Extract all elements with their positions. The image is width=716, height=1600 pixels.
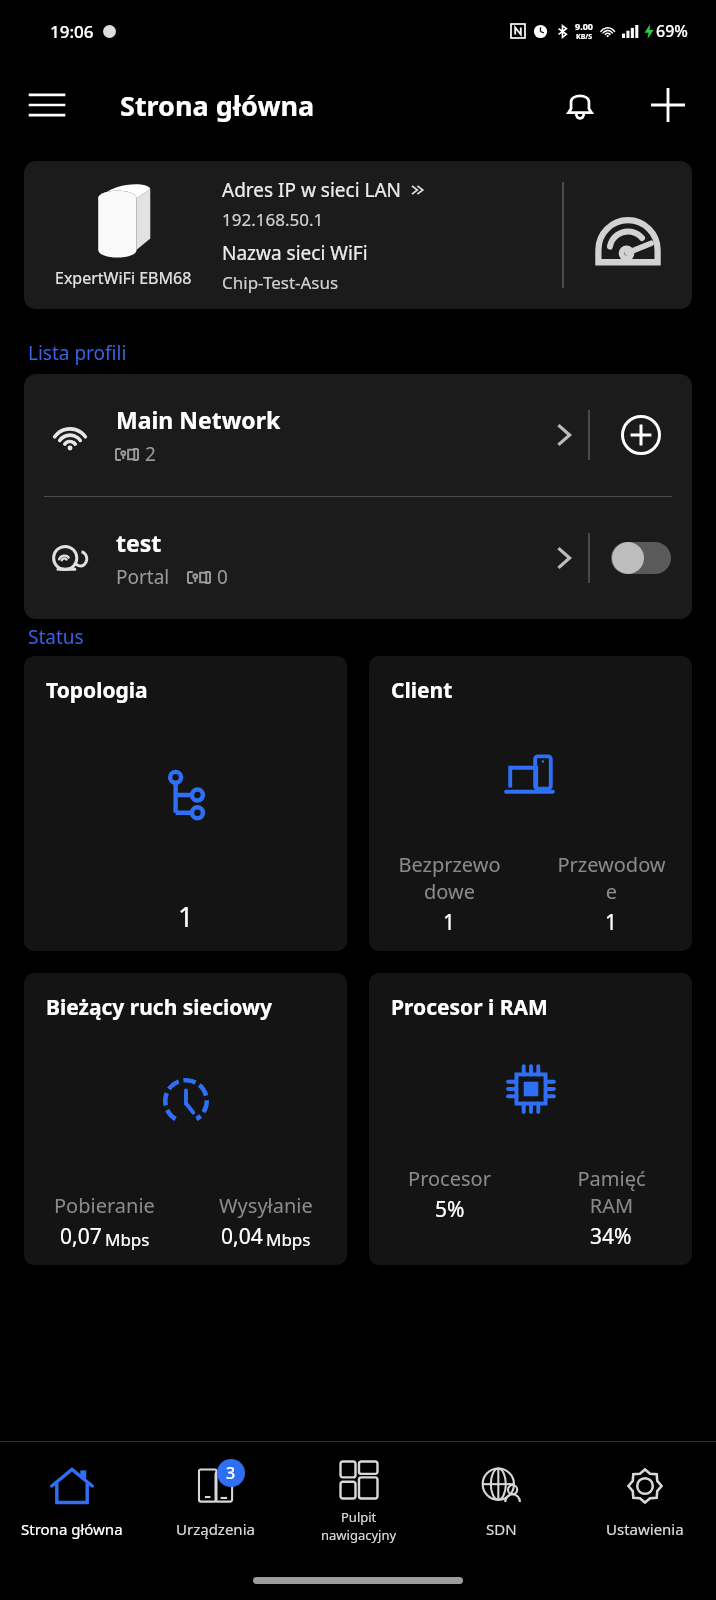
staticText: Chip-Test-Asus (222, 271, 339, 294)
staticText: 192.168.50.1 (222, 208, 324, 231)
staticText: Procesor i RAM (391, 993, 692, 1022)
button[interactable]: Open Main Network (540, 411, 588, 459)
button[interactable]: Notifications (550, 75, 610, 135)
staticText: Adres IP w sieci LAN (222, 177, 402, 203)
button[interactable]: Pulpit (287, 1442, 430, 1560)
staticText: 9.00 (575, 20, 593, 32)
button[interactable]: Add (638, 75, 698, 135)
staticText: Pobieranie (54, 1192, 155, 1219)
staticText: 5% (435, 1195, 465, 1224)
button[interactable]: Procesor i RAM (369, 973, 692, 1265)
button[interactable]: Ustawienia (573, 1442, 716, 1560)
staticText: 2 (145, 441, 156, 467)
staticText: Mbps (105, 1228, 150, 1251)
staticText: SDN (486, 1519, 517, 1539)
staticText: Bezprzewo dowe (398, 851, 501, 905)
staticText: 69% (656, 20, 688, 42)
staticText: Bieżący ruch sieciowy (46, 993, 347, 1022)
staticText: Ustawienia (606, 1519, 684, 1539)
staticText: Nazwa sieci WiFi (222, 240, 368, 266)
staticText: 0,07 (60, 1222, 102, 1251)
staticText: Urządzenia (176, 1519, 255, 1539)
staticText: Strona główna (21, 1519, 123, 1539)
staticText: 3 (226, 1462, 236, 1484)
staticText: 34% (590, 1222, 632, 1251)
staticText: Portal (116, 564, 170, 590)
staticText: Procesor (408, 1165, 491, 1192)
button[interactable]: Topologia (24, 656, 347, 951)
staticText: Pulpit (341, 1508, 377, 1526)
staticText: Client (391, 676, 692, 705)
button[interactable]: Speed test (564, 161, 692, 309)
staticText: Topologia (46, 676, 347, 705)
button[interactable]: Add device (611, 405, 671, 465)
button[interactable]: SDN (430, 1442, 573, 1560)
staticText: test (116, 527, 162, 558)
staticText: Strona główna (120, 87, 315, 124)
button[interactable]: ExpertWiFi EBM68 (24, 161, 692, 309)
button[interactable]: Strona główna (0, 1442, 144, 1560)
staticText: Mbps (266, 1228, 311, 1251)
staticText: 0,04 (221, 1222, 263, 1251)
button[interactable]: 3 (144, 1442, 287, 1560)
staticText: Pamięć RAM (577, 1165, 646, 1219)
staticText: 0 (217, 564, 228, 590)
button[interactable]: Bieżący ruch sieciowy (24, 973, 347, 1265)
staticText: Main Network (116, 404, 281, 435)
staticText: Lista profili (28, 340, 127, 366)
staticText: 1 (605, 908, 618, 937)
button[interactable]: Toggle test profile (606, 534, 676, 582)
staticText: KB/S (576, 32, 593, 42)
staticText: nawigacyjny (321, 1526, 397, 1544)
staticText: 19:06 (50, 20, 94, 43)
staticText: 1 (178, 898, 194, 935)
button[interactable]: Main Network (24, 374, 692, 496)
staticText: Przewodow e (557, 851, 666, 905)
button[interactable]: Open test (540, 534, 588, 582)
button[interactable]: test (24, 497, 692, 619)
staticText: 1 (443, 908, 456, 937)
staticText: Status (28, 624, 84, 650)
button[interactable]: Menu (16, 74, 78, 136)
button[interactable]: Client (369, 656, 692, 951)
staticText: Wysyłanie (219, 1192, 313, 1219)
staticText: ExpertWiFi EBM68 (55, 267, 192, 289)
